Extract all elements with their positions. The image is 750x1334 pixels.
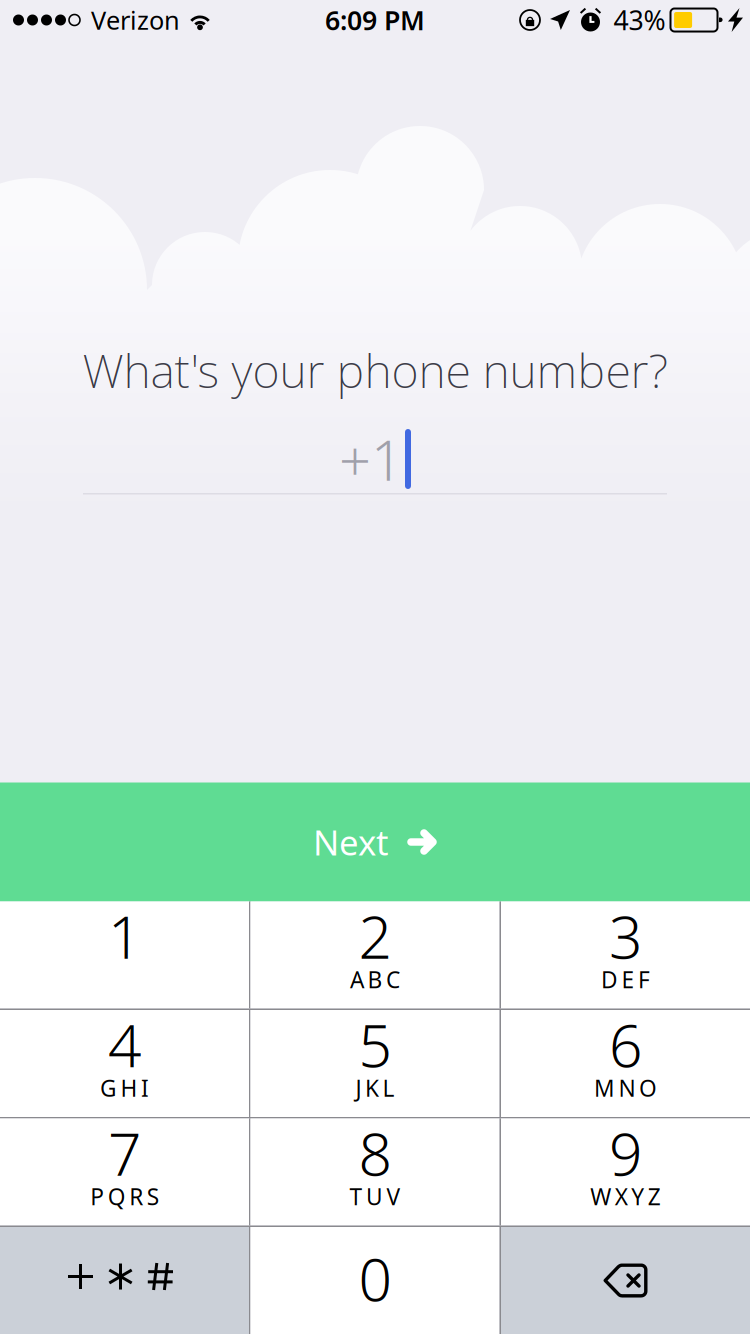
staticText: ABC — [350, 964, 400, 994]
staticText: WXYZ — [590, 1181, 661, 1211]
button[interactable]: Delete — [501, 1227, 750, 1334]
staticText: 43% — [613, 2, 665, 38]
button[interactable]: 5 — [250, 1010, 499, 1117]
button[interactable]: 0 — [250, 1227, 499, 1334]
staticText: 4 — [108, 1005, 141, 1083]
staticText: +1 — [339, 422, 403, 496]
staticText: 6 — [609, 1005, 642, 1083]
button[interactable]: 1 — [0, 901, 249, 1008]
staticText: 3 — [609, 897, 642, 975]
staticText: JKL — [355, 1073, 394, 1103]
staticText: PQRS — [90, 1181, 159, 1211]
button[interactable]: Next — [0, 782, 750, 901]
button[interactable]: 4 — [0, 1010, 249, 1117]
staticText: 6:09 PM — [325, 2, 425, 38]
button[interactable]: Symbols — [0, 1227, 249, 1334]
staticText: Verizon — [91, 3, 180, 37]
button[interactable]: 2 — [250, 901, 499, 1008]
staticText: 0 — [358, 1239, 391, 1317]
staticText: TUV — [349, 1181, 400, 1211]
staticText: 9 — [609, 1114, 642, 1192]
staticText: 8 — [358, 1114, 391, 1192]
staticText: What's your phone number? — [82, 339, 667, 401]
button[interactable]: 9 — [501, 1118, 750, 1225]
staticText: Next — [313, 819, 389, 865]
staticText: 5 — [358, 1005, 391, 1083]
staticText: 7 — [108, 1114, 141, 1192]
staticText: MNO — [594, 1073, 657, 1103]
button[interactable]: 3 — [501, 901, 750, 1008]
button[interactable]: 6 — [501, 1010, 750, 1117]
staticText: DEF — [601, 964, 650, 994]
staticText: GHI — [100, 1073, 149, 1103]
button[interactable]: 7 — [0, 1118, 249, 1225]
staticText: 2 — [358, 897, 391, 975]
staticText: 1 — [108, 897, 141, 975]
button[interactable]: 8 — [250, 1118, 499, 1225]
